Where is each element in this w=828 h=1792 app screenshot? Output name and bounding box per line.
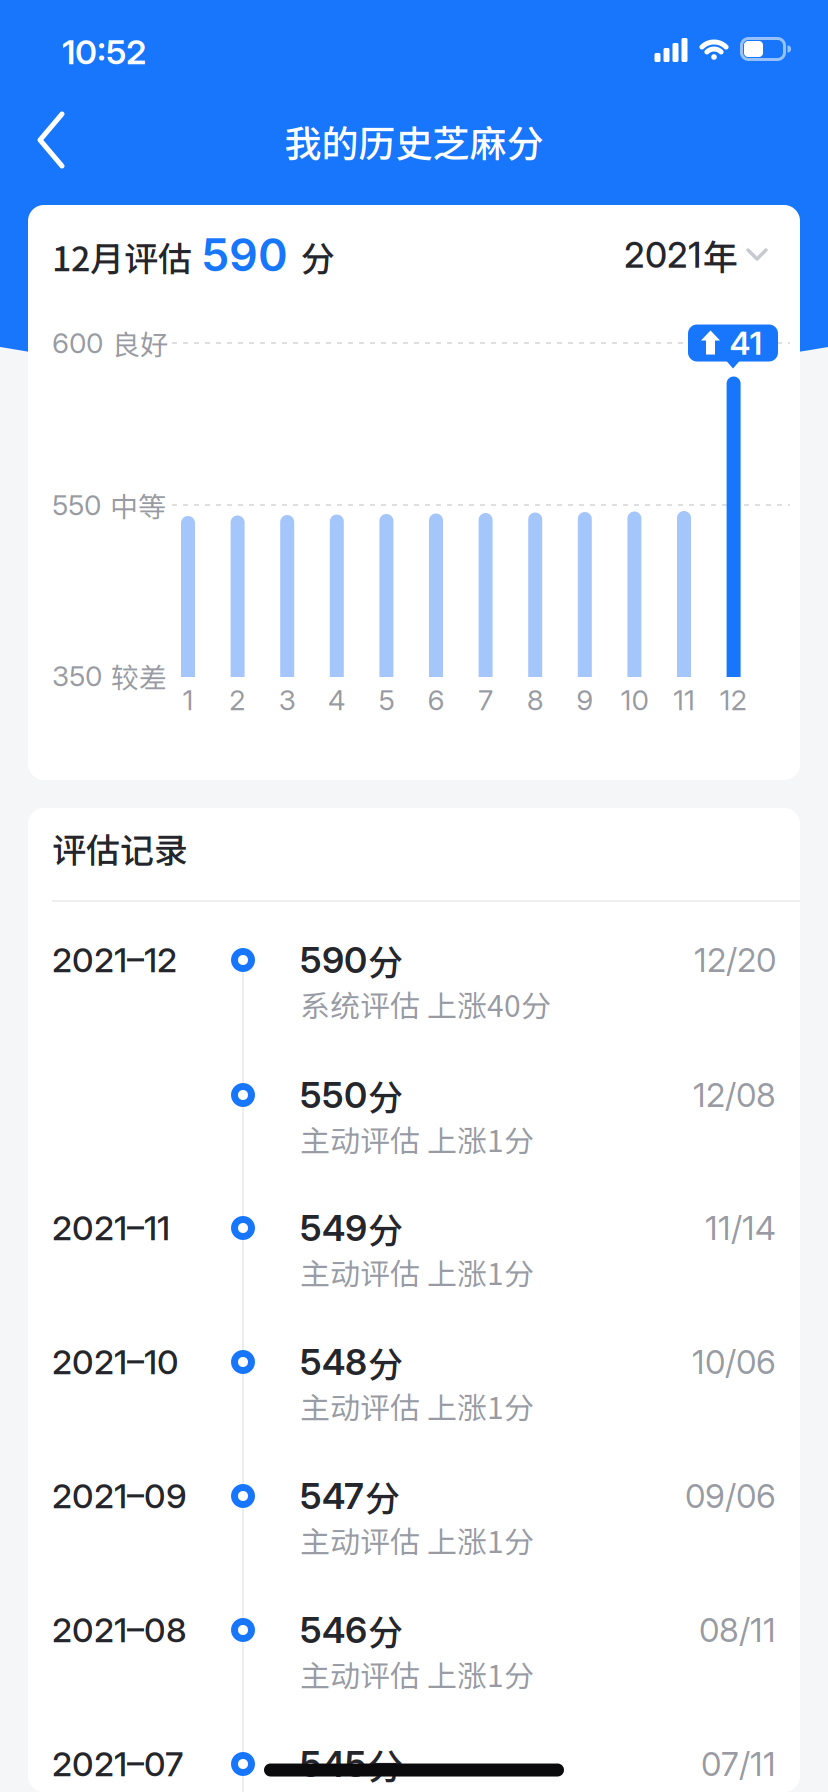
staticText: 12 bbox=[720, 683, 748, 717]
staticText: 2021–08 bbox=[52, 1609, 187, 1650]
staticText: 分 bbox=[368, 1605, 403, 1655]
staticText: 2021–12 bbox=[52, 939, 177, 980]
staticText: 550 bbox=[52, 488, 101, 522]
staticText: 3 bbox=[279, 683, 296, 717]
staticText: 2021–10 bbox=[52, 1341, 179, 1382]
staticText: 分 bbox=[368, 1203, 403, 1253]
staticText: 12月评估 bbox=[52, 232, 192, 281]
staticText: 中等 bbox=[110, 485, 166, 525]
staticText: 590 bbox=[300, 938, 367, 982]
staticText: 6 bbox=[427, 683, 444, 717]
staticText: 8 bbox=[527, 683, 544, 717]
staticText: 分 bbox=[368, 1070, 403, 1120]
staticText: 547 bbox=[300, 1474, 364, 1518]
staticText: 2021–07 bbox=[52, 1743, 183, 1784]
staticText: 07/11 bbox=[701, 1744, 776, 1784]
staticText: 较差 bbox=[111, 656, 167, 696]
staticText: 545 bbox=[300, 1742, 367, 1786]
staticText: 2021–11 bbox=[52, 1207, 170, 1248]
staticText: 4 bbox=[328, 683, 346, 717]
staticText: 9 bbox=[576, 683, 593, 717]
staticText: 11 bbox=[673, 683, 695, 717]
staticText: 549 bbox=[300, 1206, 367, 1250]
staticText: 5 bbox=[378, 683, 394, 717]
button[interactable] bbox=[17, 106, 85, 174]
staticText: 主动评估 上涨1分 bbox=[300, 1117, 534, 1161]
staticText: 良好 bbox=[112, 323, 168, 363]
staticText: 550 bbox=[300, 1073, 367, 1117]
staticText: 分 bbox=[301, 232, 335, 281]
button[interactable]: 2021 bbox=[624, 230, 768, 280]
staticText: 7 bbox=[478, 683, 493, 717]
staticText: 分 bbox=[368, 1337, 403, 1387]
staticText: 09/06 bbox=[685, 1476, 776, 1516]
staticText: 主动评估 上涨1分 bbox=[300, 1250, 534, 1294]
staticText: 600 bbox=[52, 326, 103, 360]
staticText: 我的历史芝麻分 bbox=[284, 114, 543, 168]
staticText: 评估记录 bbox=[52, 823, 188, 873]
staticText: 548 bbox=[300, 1340, 367, 1384]
staticText: 10 bbox=[620, 683, 648, 717]
staticText: 41 bbox=[729, 324, 762, 362]
staticText: 11/14 bbox=[705, 1208, 776, 1248]
staticText: 10/06 bbox=[692, 1342, 776, 1382]
staticText: 主动评估 上涨1分 bbox=[300, 1518, 534, 1562]
staticText: 08/11 bbox=[699, 1610, 776, 1650]
staticText: 546 bbox=[300, 1608, 367, 1652]
staticText: 系统评估 上涨40分 bbox=[300, 982, 551, 1026]
staticText: 12/08 bbox=[693, 1075, 776, 1115]
staticText: 12/20 bbox=[694, 940, 776, 980]
staticText: 分 bbox=[365, 1471, 400, 1521]
staticText: 主动评估 上涨1分 bbox=[300, 1384, 534, 1428]
staticText: 1 bbox=[182, 683, 193, 717]
staticText: 10:52 bbox=[62, 31, 146, 72]
staticText: 年 bbox=[703, 230, 738, 280]
staticText: 主动评估 上涨1分 bbox=[300, 1652, 534, 1696]
staticText: 分 bbox=[368, 1739, 403, 1789]
staticText: 分 bbox=[368, 935, 403, 985]
staticText: 2 bbox=[229, 683, 246, 717]
staticText: 590 bbox=[201, 228, 288, 282]
staticText: 350 bbox=[52, 659, 102, 693]
staticText: 2021 bbox=[624, 234, 701, 276]
staticText: 2021–09 bbox=[52, 1475, 187, 1516]
